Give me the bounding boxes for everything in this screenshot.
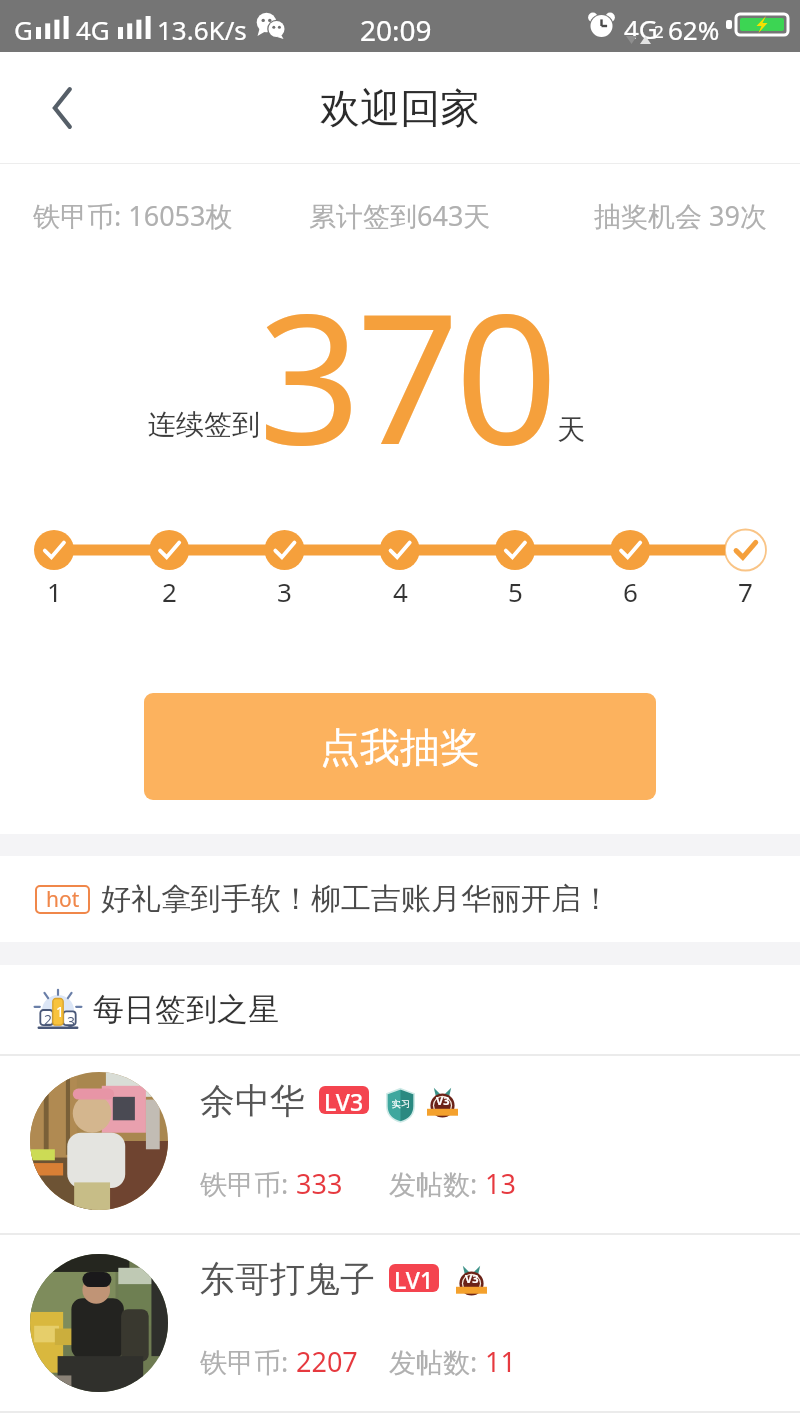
staticText: 余中华: [200, 1079, 305, 1123]
staticText: V3: [436, 1093, 450, 1108]
button[interactable]: hot: [0, 856, 800, 942]
staticText: LV3: [324, 1086, 364, 1114]
staticText: 370: [258, 252, 554, 497]
staticText: 2207: [296, 1343, 358, 1380]
staticText: 11: [485, 1343, 516, 1380]
staticText: 6: [623, 574, 638, 606]
staticText: 2: [654, 20, 664, 43]
staticText: 天: [557, 412, 585, 447]
staticText: 连续签到: [148, 407, 260, 442]
staticText: 每日签到之星: [93, 990, 279, 1029]
staticText: hot: [46, 885, 80, 914]
staticText: 铁甲币:: [200, 1343, 296, 1380]
button[interactable]: Back: [0, 52, 120, 163]
staticText: V3: [465, 1271, 479, 1286]
staticText: G: [14, 12, 33, 47]
staticText: 发帖数:: [389, 1343, 485, 1380]
staticText: 铁甲币: 16053枚: [33, 197, 233, 234]
button[interactable]: 余中华: [0, 1055, 800, 1233]
staticText: 13.6K/s: [157, 12, 247, 47]
button[interactable]: 东哥打鬼子: [0, 1236, 800, 1414]
staticText: 20:09: [360, 11, 432, 49]
staticText: 东哥打鬼子: [200, 1257, 375, 1301]
staticText: 7: [738, 574, 753, 606]
staticText: 铁甲币:: [200, 1165, 296, 1202]
staticText: 62%: [668, 12, 720, 47]
button[interactable]: 点我抽奖: [144, 693, 656, 800]
staticText: 发帖数:: [389, 1165, 485, 1202]
staticText: 2: [44, 1010, 53, 1029]
staticText: 抽奖机会 39次: [594, 197, 767, 234]
staticText: 13: [485, 1165, 516, 1202]
staticText: 点我抽奖: [320, 722, 480, 772]
staticText: LV1: [394, 1264, 434, 1292]
staticText: 1: [56, 1002, 65, 1021]
staticText: 4G: [624, 11, 658, 46]
staticText: 5: [508, 574, 523, 606]
staticText: 333: [296, 1165, 343, 1202]
staticText: 3: [277, 574, 292, 606]
staticText: 实习: [392, 1098, 410, 1109]
staticText: 2: [162, 574, 177, 606]
staticText: 1: [47, 574, 62, 606]
staticText: 好礼拿到手软！柳工吉账月华丽开启！: [101, 880, 611, 918]
staticText: 欢迎回家: [320, 83, 480, 133]
staticText: 3: [67, 1012, 76, 1031]
staticText: 累计签到643天: [309, 197, 491, 234]
staticText: 4: [393, 574, 408, 606]
staticText: 4G: [76, 12, 110, 47]
